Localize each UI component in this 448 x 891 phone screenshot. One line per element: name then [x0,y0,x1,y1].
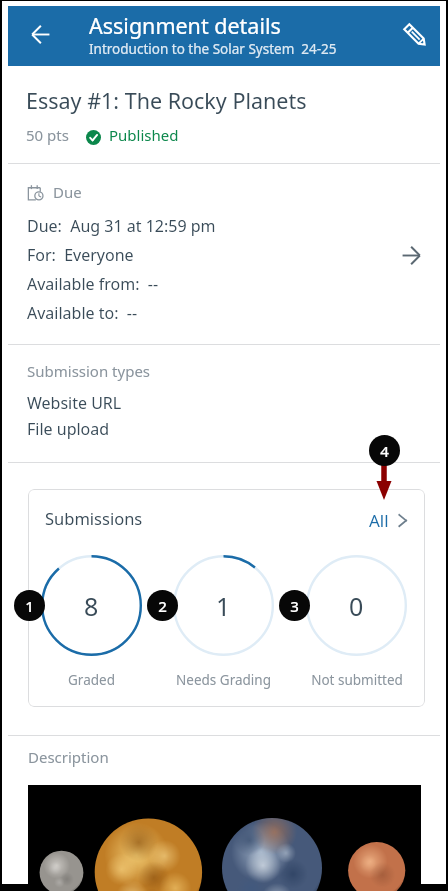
button[interactable]: Back [16,10,64,58]
staticText: Not submitted [311,671,403,689]
staticText: 0 [349,589,364,623]
staticText: Available to: -- [27,302,138,324]
staticText: Available from: -- [27,273,159,295]
staticText: Submissions [45,507,143,529]
staticText: For: Everyone [27,244,134,266]
staticText: 4 [380,441,389,461]
staticText: Essay #1: The Rocky Planets [26,86,307,115]
staticText: Description [28,747,109,767]
button[interactable]: Edit assignment [391,11,439,59]
staticText: Website URL [27,392,122,414]
staticText: File upload [27,418,110,440]
staticText: Submission types [27,361,151,381]
staticText: Needs Grading [176,671,271,689]
staticText: 1 [25,596,34,616]
staticText: 8 [84,589,99,623]
staticText: 1 [216,589,231,623]
button[interactable]: All [369,506,409,534]
staticText: 50 pts [26,125,69,145]
staticText: Due [53,182,82,202]
staticText: 3 [290,596,299,616]
button[interactable]: Due [2,167,446,339]
staticText: Due: Aug 31 at 12:59 pm [27,215,216,237]
staticText: Introduction to the Solar System 24-25 [89,40,337,58]
staticText: Graded [68,671,115,689]
staticText: All [369,509,389,532]
staticText: Assignment details [89,11,281,40]
staticText: Published [109,125,179,145]
staticText: 2 [158,596,167,616]
